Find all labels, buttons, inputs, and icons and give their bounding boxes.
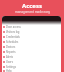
button[interactable]: Settings bbox=[2, 64, 61, 69]
button[interactable]: Reports bbox=[2, 49, 61, 54]
staticText: management made easy bbox=[15, 10, 50, 14]
button[interactable]: Schedules bbox=[2, 39, 61, 44]
staticText: Users bbox=[6, 60, 13, 64]
staticText: Door access bbox=[6, 25, 21, 29]
staticText: Help bbox=[6, 69, 12, 72]
button[interactable]: Credentials bbox=[2, 34, 61, 39]
staticText: Alerts bbox=[6, 55, 14, 59]
staticText: Schedules bbox=[6, 40, 19, 44]
button[interactable]: Visitors log bbox=[2, 29, 61, 34]
button[interactable]: Alerts bbox=[2, 54, 61, 59]
staticText: Access bbox=[22, 2, 42, 10]
staticText: Reports bbox=[6, 50, 16, 54]
button[interactable]: Devices bbox=[2, 44, 61, 49]
staticText: Visitors log bbox=[6, 30, 20, 34]
button[interactable]: Users bbox=[2, 59, 61, 64]
staticText: Devices bbox=[6, 45, 16, 49]
staticText: Credentials bbox=[6, 35, 20, 39]
button[interactable]: Help bbox=[2, 69, 61, 72]
button[interactable]: Door access bbox=[2, 24, 61, 29]
staticText: Settings bbox=[6, 65, 16, 69]
